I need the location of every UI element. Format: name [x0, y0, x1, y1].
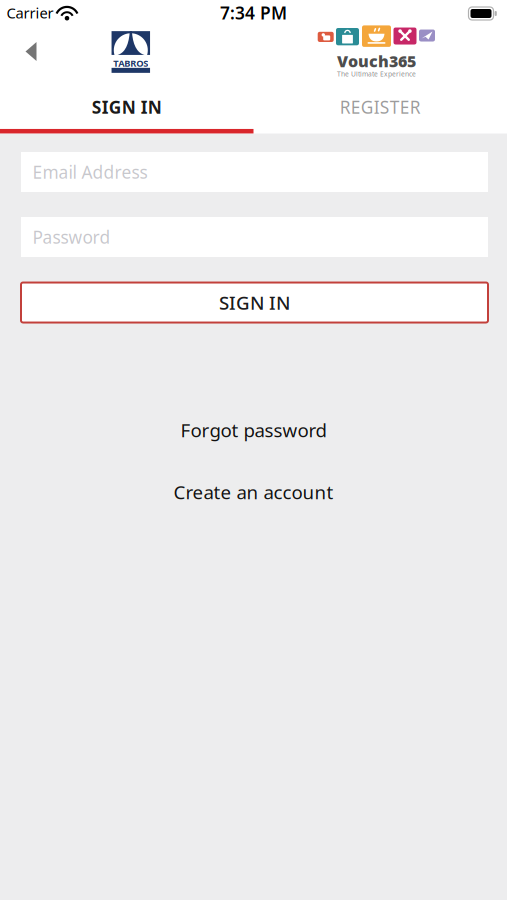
button[interactable]: Forgot password — [180, 418, 326, 442]
staticText: Forgot password — [180, 418, 326, 442]
button[interactable]: REGISTER — [253, 87, 507, 127]
staticText: 7:34 PM — [220, 1, 287, 24]
staticText: Password — [32, 225, 110, 248]
staticText: TABROS — [113, 57, 148, 69]
staticText: Create an account — [173, 480, 333, 504]
staticText: Carrier — [6, 3, 53, 22]
button[interactable]: SIGN IN — [21, 282, 488, 322]
button[interactable]: Password — [21, 217, 488, 257]
button[interactable]: Email Address — [21, 152, 488, 192]
button[interactable]: Back — [25, 41, 37, 61]
staticText: REGISTER — [340, 95, 421, 118]
staticText: Email Address — [32, 160, 147, 183]
button[interactable]: Create an account — [173, 480, 333, 504]
button[interactable]: SIGN IN — [0, 87, 253, 127]
staticText: SIGN IN — [92, 95, 162, 118]
staticText: The Ultimate Experience — [337, 70, 416, 78]
staticText: SIGN IN — [219, 290, 290, 315]
staticText: Vouch365 — [337, 50, 416, 72]
